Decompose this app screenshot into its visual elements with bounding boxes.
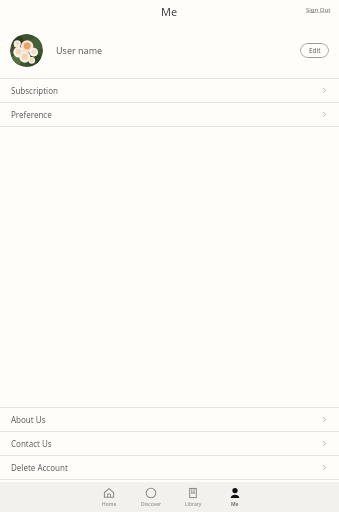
staticText: Contact Us	[11, 438, 52, 449]
button[interactable]: Home	[88, 482, 130, 512]
staticText: Me	[161, 4, 178, 19]
staticText: About Us	[11, 414, 46, 425]
button[interactable]: Preference	[0, 103, 339, 126]
staticText: Preference	[11, 109, 52, 120]
button[interactable]: Me	[214, 482, 256, 512]
staticText: Library	[185, 501, 202, 508]
staticText: Edit	[309, 46, 321, 55]
button[interactable]: Subscription	[0, 79, 339, 102]
staticText: Subscription	[11, 85, 58, 96]
button[interactable]: Contact Us	[0, 432, 339, 455]
button[interactable]: Edit	[300, 43, 329, 58]
staticText: User name	[56, 44, 103, 56]
staticText: Me	[231, 501, 239, 508]
button[interactable]: Profile photo	[10, 34, 43, 67]
button[interactable]: Library	[172, 482, 214, 512]
staticText: Home	[102, 501, 117, 508]
button[interactable]: Discover	[130, 482, 172, 512]
staticText: Sign Out	[306, 6, 331, 14]
staticText: Discover	[141, 501, 162, 508]
button[interactable]: Delete Account	[0, 456, 339, 479]
staticText: Delete Account	[11, 462, 68, 473]
button[interactable]: Sign Out	[298, 2, 339, 18]
button[interactable]: About Us	[0, 408, 339, 431]
